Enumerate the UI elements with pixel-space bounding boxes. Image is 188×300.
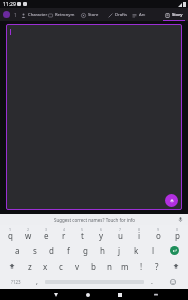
staticText: Store	[88, 12, 99, 18]
button[interactable]: Hide keyboard	[136, 289, 175, 300]
button[interactable]: s	[26, 242, 43, 258]
button[interactable]: ,	[29, 274, 45, 289]
staticText: n	[107, 261, 112, 272]
button[interactable]: 8	[130, 225, 149, 242]
button[interactable]: f	[60, 242, 77, 258]
staticText: .	[151, 277, 153, 287]
button[interactable]: ?123	[2, 274, 29, 289]
button[interactable]: Emoji	[160, 274, 186, 289]
button[interactable]: Home	[72, 289, 104, 300]
staticText: Drafts	[115, 12, 128, 18]
staticText: ?	[155, 261, 159, 272]
staticText: o	[156, 230, 161, 241]
button[interactable]: 7	[111, 225, 130, 242]
staticText: 8	[138, 227, 141, 232]
button[interactable]: Enter	[162, 242, 187, 258]
button[interactable]: 1	[1, 225, 19, 242]
button[interactable]: Store	[76, 8, 104, 21]
button[interactable]: l	[145, 242, 162, 258]
button[interactable]: 2	[19, 225, 37, 242]
button[interactable]: d	[43, 242, 60, 258]
staticText: 4	[63, 227, 66, 232]
staticText: u	[118, 230, 123, 241]
staticText: 9	[157, 227, 160, 232]
button[interactable]: m	[117, 258, 133, 274]
button[interactable]: Voice input	[177, 216, 184, 223]
staticText: Characters	[28, 12, 48, 18]
button[interactable]: g	[77, 242, 94, 258]
staticText: i	[138, 230, 141, 241]
staticText: !	[140, 261, 143, 272]
staticText: h	[100, 245, 105, 256]
button[interactable]: Recents	[104, 289, 136, 300]
staticText: Arc Keywords	[139, 12, 160, 18]
staticText: r	[62, 230, 66, 241]
button[interactable]: Profile	[3, 11, 10, 18]
staticText: m	[121, 261, 129, 272]
staticText: 11:29	[3, 1, 16, 8]
button[interactable]: 6	[92, 225, 111, 242]
staticText: 7	[119, 227, 122, 232]
button[interactable]: Arc Keywords	[132, 8, 160, 21]
staticText: 1	[9, 227, 12, 232]
staticText: ,	[36, 277, 38, 287]
button[interactable]: Scroll up	[165, 194, 178, 207]
staticText: w	[25, 230, 32, 241]
button[interactable]: j	[111, 242, 128, 258]
button[interactable]: Characters	[21, 8, 48, 21]
staticText: Suggest correct names? Touch for info	[54, 217, 135, 223]
button[interactable]: !	[133, 258, 149, 274]
button[interactable]: n	[101, 258, 117, 274]
staticText: j	[118, 245, 121, 256]
staticText: e	[44, 230, 49, 241]
button[interactable]: ?	[149, 258, 165, 274]
staticText: Retronyms	[55, 12, 76, 18]
staticText: t	[81, 230, 84, 241]
button[interactable]: k	[128, 242, 145, 258]
button[interactable]: Shift	[165, 258, 187, 274]
staticText: b	[91, 261, 96, 272]
button[interactable]: Scroll up	[6, 24, 182, 210]
staticText: Story	[172, 12, 183, 18]
button[interactable]: a	[9, 242, 26, 258]
staticText: q	[8, 230, 13, 241]
staticText: d	[49, 245, 54, 256]
button[interactable]: h	[94, 242, 111, 258]
staticText: y	[99, 230, 104, 241]
button[interactable]: v	[69, 258, 85, 274]
staticText: 1	[14, 12, 17, 18]
button[interactable]: b	[85, 258, 101, 274]
staticText: 0	[176, 227, 179, 232]
button[interactable]: Back	[40, 289, 72, 300]
button[interactable]: .	[144, 274, 160, 289]
staticText: ?123	[11, 279, 21, 285]
button[interactable]: 5	[73, 225, 92, 242]
staticText: 6	[100, 227, 103, 232]
staticText: s	[33, 245, 37, 256]
staticText: k	[134, 245, 139, 256]
staticText: g	[83, 245, 88, 256]
button[interactable]: Retronyms	[48, 8, 76, 21]
button[interactable]: 4	[55, 225, 73, 242]
button[interactable]: 9	[149, 225, 168, 242]
staticText: l	[152, 245, 155, 256]
staticText: v	[75, 261, 80, 272]
staticText: 2	[27, 227, 30, 232]
staticText: 5	[81, 227, 84, 232]
staticText: 3	[45, 227, 48, 232]
button[interactable]: z	[22, 258, 37, 274]
staticText: z	[28, 261, 32, 272]
button[interactable]: Story	[160, 8, 188, 21]
button[interactable]: Shift	[1, 258, 22, 274]
button[interactable]: 0	[168, 225, 187, 242]
button[interactable]: Space	[45, 278, 144, 285]
button[interactable]: Drafts	[104, 8, 132, 21]
staticText: c	[59, 261, 63, 272]
button[interactable]: x	[37, 258, 53, 274]
staticText: x	[43, 261, 48, 272]
staticText: f	[67, 245, 70, 256]
staticText: p	[175, 230, 180, 241]
button[interactable]: 3	[37, 225, 55, 242]
button[interactable]: c	[53, 258, 69, 274]
staticText: a	[15, 245, 20, 256]
